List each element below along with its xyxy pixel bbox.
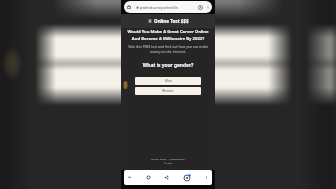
staticText: Would You Make A Great Career Online And… (124, 29, 212, 41)
button[interactable]: Switch tabs (182, 173, 192, 183)
button[interactable]: Home (145, 174, 152, 181)
button[interactable]: Woman (135, 87, 201, 95)
staticText: © 2022 (124, 161, 212, 164)
button[interactable]: More options (203, 174, 210, 181)
button[interactable]: Home (126, 4, 132, 10)
button[interactable]: Account (198, 5, 203, 10)
button[interactable]: Back (126, 174, 133, 181)
staticText: Online Test $$$ (154, 18, 189, 24)
staticText: Take this FREE test and find out how you… (124, 44, 212, 54)
staticText: profitedsurvey.online/lin (140, 5, 178, 9)
button[interactable]: More options (206, 5, 210, 9)
staticText: What is your gender? (124, 62, 212, 69)
button[interactable]: Share (163, 174, 170, 181)
staticText: Privacy Policy | Cookie Policy (124, 157, 212, 160)
staticText: Man (165, 79, 172, 83)
staticText: Woman (162, 89, 174, 93)
button[interactable]: Man (135, 77, 201, 85)
